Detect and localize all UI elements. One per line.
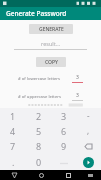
button[interactable]: COMMA — [76, 123, 101, 138]
button[interactable]: 8 — [26, 138, 51, 154]
button[interactable]: GO — [76, 154, 101, 170]
staticText: - — [87, 110, 90, 121]
button[interactable]: . — [0, 154, 26, 170]
staticText: 2 — [36, 110, 42, 122]
button[interactable]: Home — [36, 170, 46, 180]
button[interactable]: 7 — [0, 138, 26, 154]
staticText: COPY — [45, 59, 58, 66]
button[interactable]: Switch keyboard — [85, 170, 95, 180]
staticText: , — [87, 125, 90, 136]
staticText: result... — [41, 40, 61, 47]
staticText: 9 — [61, 140, 67, 152]
button[interactable]: 0 — [26, 154, 51, 170]
button[interactable]: 6 — [51, 123, 76, 138]
button[interactable]: DASH — [76, 108, 101, 123]
staticText: 3 — [76, 92, 79, 99]
button[interactable]: 1 — [0, 108, 26, 123]
staticText: # of uppercase letters — [18, 94, 68, 100]
button[interactable]: # of lowercase letters — [18, 74, 83, 83]
staticText: 4 — [10, 125, 16, 137]
button[interactable]: 4 — [0, 123, 26, 138]
button[interactable]: COPY — [36, 57, 66, 67]
staticText: 7 — [10, 140, 16, 152]
staticText: . — [12, 156, 15, 168]
button[interactable]: 2 — [26, 108, 51, 123]
staticText: 3 — [61, 110, 67, 122]
button[interactable]: result... — [14, 40, 87, 50]
staticText: 3 — [76, 74, 79, 81]
button[interactable]: 3 — [51, 108, 76, 123]
staticText: 0 — [36, 156, 42, 168]
button[interactable]: 5 — [26, 123, 51, 138]
staticText: # of lowercase letters — [18, 76, 68, 82]
button[interactable]: Back — [9, 170, 19, 180]
staticText: 1 — [10, 110, 16, 122]
staticText: 6 — [61, 125, 67, 137]
staticText: Generate Password — [6, 9, 67, 18]
button[interactable]: GENERATE — [29, 24, 73, 34]
staticText: 5 — [36, 125, 42, 137]
button[interactable]: Recents — [63, 170, 73, 180]
button[interactable]: DELETE — [76, 138, 101, 154]
staticText: 8 — [36, 140, 42, 152]
button[interactable]: 9 — [51, 138, 76, 154]
staticText: GENERATE — [39, 26, 64, 33]
button[interactable]: # of uppercase letters — [18, 92, 83, 101]
